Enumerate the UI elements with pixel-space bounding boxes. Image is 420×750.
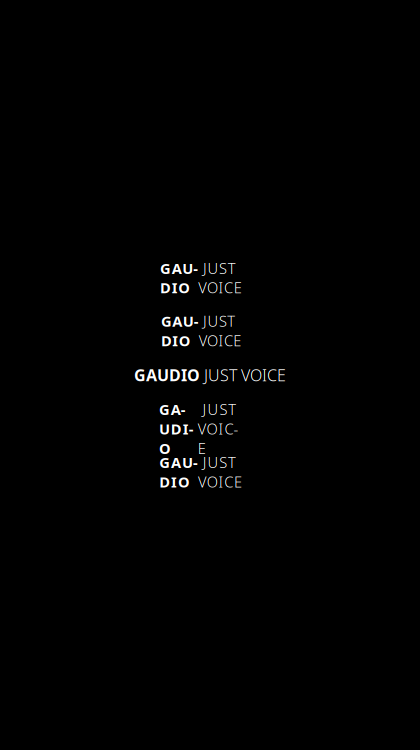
staticText: JUST VOICE [198,453,242,492]
staticText: JUST VOICE [198,258,242,297]
staticText: GAUDIO [160,258,198,297]
staticText: GAUDIO [159,400,198,439]
staticText: JUST VOICE [198,400,242,439]
staticText: GAUDIO [161,311,199,350]
staticText: JUST VOICE [200,364,286,386]
staticText: GAUDIO [159,453,198,492]
staticText: GAUDIO [134,364,200,386]
staticText: JUST VOICE [199,311,241,350]
